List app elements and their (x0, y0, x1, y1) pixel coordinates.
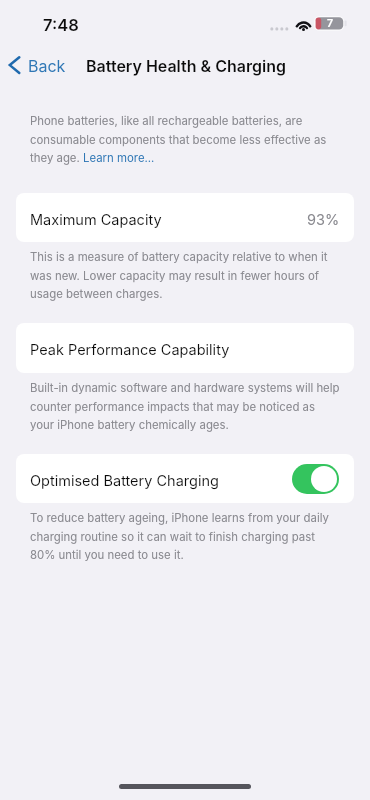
button[interactable]: Back (6, 50, 66, 80)
staticText: To reduce battery ageing, iPhone learns … (30, 511, 340, 561)
button[interactable]: Peak Performance Capability (16, 323, 354, 373)
staticText: 7:48 (43, 15, 79, 35)
staticText: Phone batteries, like all rechargeable b… (30, 114, 340, 164)
staticText: This is a measure of battery capacity re… (30, 250, 340, 300)
button[interactable]: Maximum Capacity (16, 193, 354, 242)
staticText: 7 (327, 17, 334, 30)
staticText: Built-in dynamic software and hardware s… (30, 381, 340, 431)
staticText: 93% (307, 211, 340, 229)
staticText: Peak Performance Capability (30, 341, 230, 359)
button[interactable]: Optimised Battery Charging toggle (292, 464, 339, 494)
staticText: Optimised Battery Charging (30, 472, 219, 490)
button[interactable]: Learn more (83, 150, 155, 165)
staticText: Back (28, 56, 66, 75)
staticText: Maximum Capacity (30, 211, 162, 229)
staticText: Battery Health & Charging (86, 56, 286, 75)
button[interactable]: Optimised Battery Charging (16, 454, 354, 503)
other: Back (6, 54, 22, 76)
